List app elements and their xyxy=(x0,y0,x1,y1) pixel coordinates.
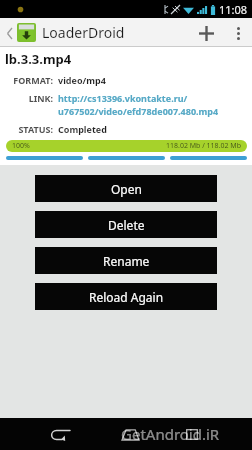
staticText: STATUS: xyxy=(18,123,53,135)
button[interactable]: Delete xyxy=(35,211,217,238)
staticText: Completed xyxy=(58,123,107,135)
button[interactable]: Add download xyxy=(192,19,220,47)
button[interactable]: Back xyxy=(42,418,78,450)
button[interactable]: Navigate up xyxy=(2,20,16,46)
staticText: FORMAT: xyxy=(13,74,53,86)
button[interactable]: Reload Again xyxy=(35,283,217,310)
staticText: GetAndroid.iR xyxy=(121,424,220,444)
staticText: Delete xyxy=(108,217,145,233)
button[interactable]: Open xyxy=(35,175,217,202)
staticText: 118.02 Mb / 118.02 Mb xyxy=(166,141,241,151)
staticText: LINK: xyxy=(28,92,53,104)
staticText: video/mp4 xyxy=(58,74,106,86)
staticText: Reload Again xyxy=(89,289,164,305)
staticText: lb.3.3.mp4 xyxy=(5,50,72,68)
staticText: 11:08 xyxy=(219,2,248,17)
button[interactable]: Rename xyxy=(35,247,217,274)
button[interactable]: Home xyxy=(114,418,146,450)
staticText: LoaderDroid xyxy=(42,23,125,42)
staticText: u767502/video/efd78de007.480.mp4 xyxy=(58,105,219,117)
staticText: Rename xyxy=(103,253,150,269)
staticText: http://cs13396.vkontakte.ru/ xyxy=(58,92,188,104)
staticText: 100% xyxy=(12,141,30,151)
button[interactable]: Recent apps xyxy=(176,418,208,450)
button[interactable]: More options xyxy=(228,19,248,47)
staticText: Open xyxy=(111,181,142,197)
